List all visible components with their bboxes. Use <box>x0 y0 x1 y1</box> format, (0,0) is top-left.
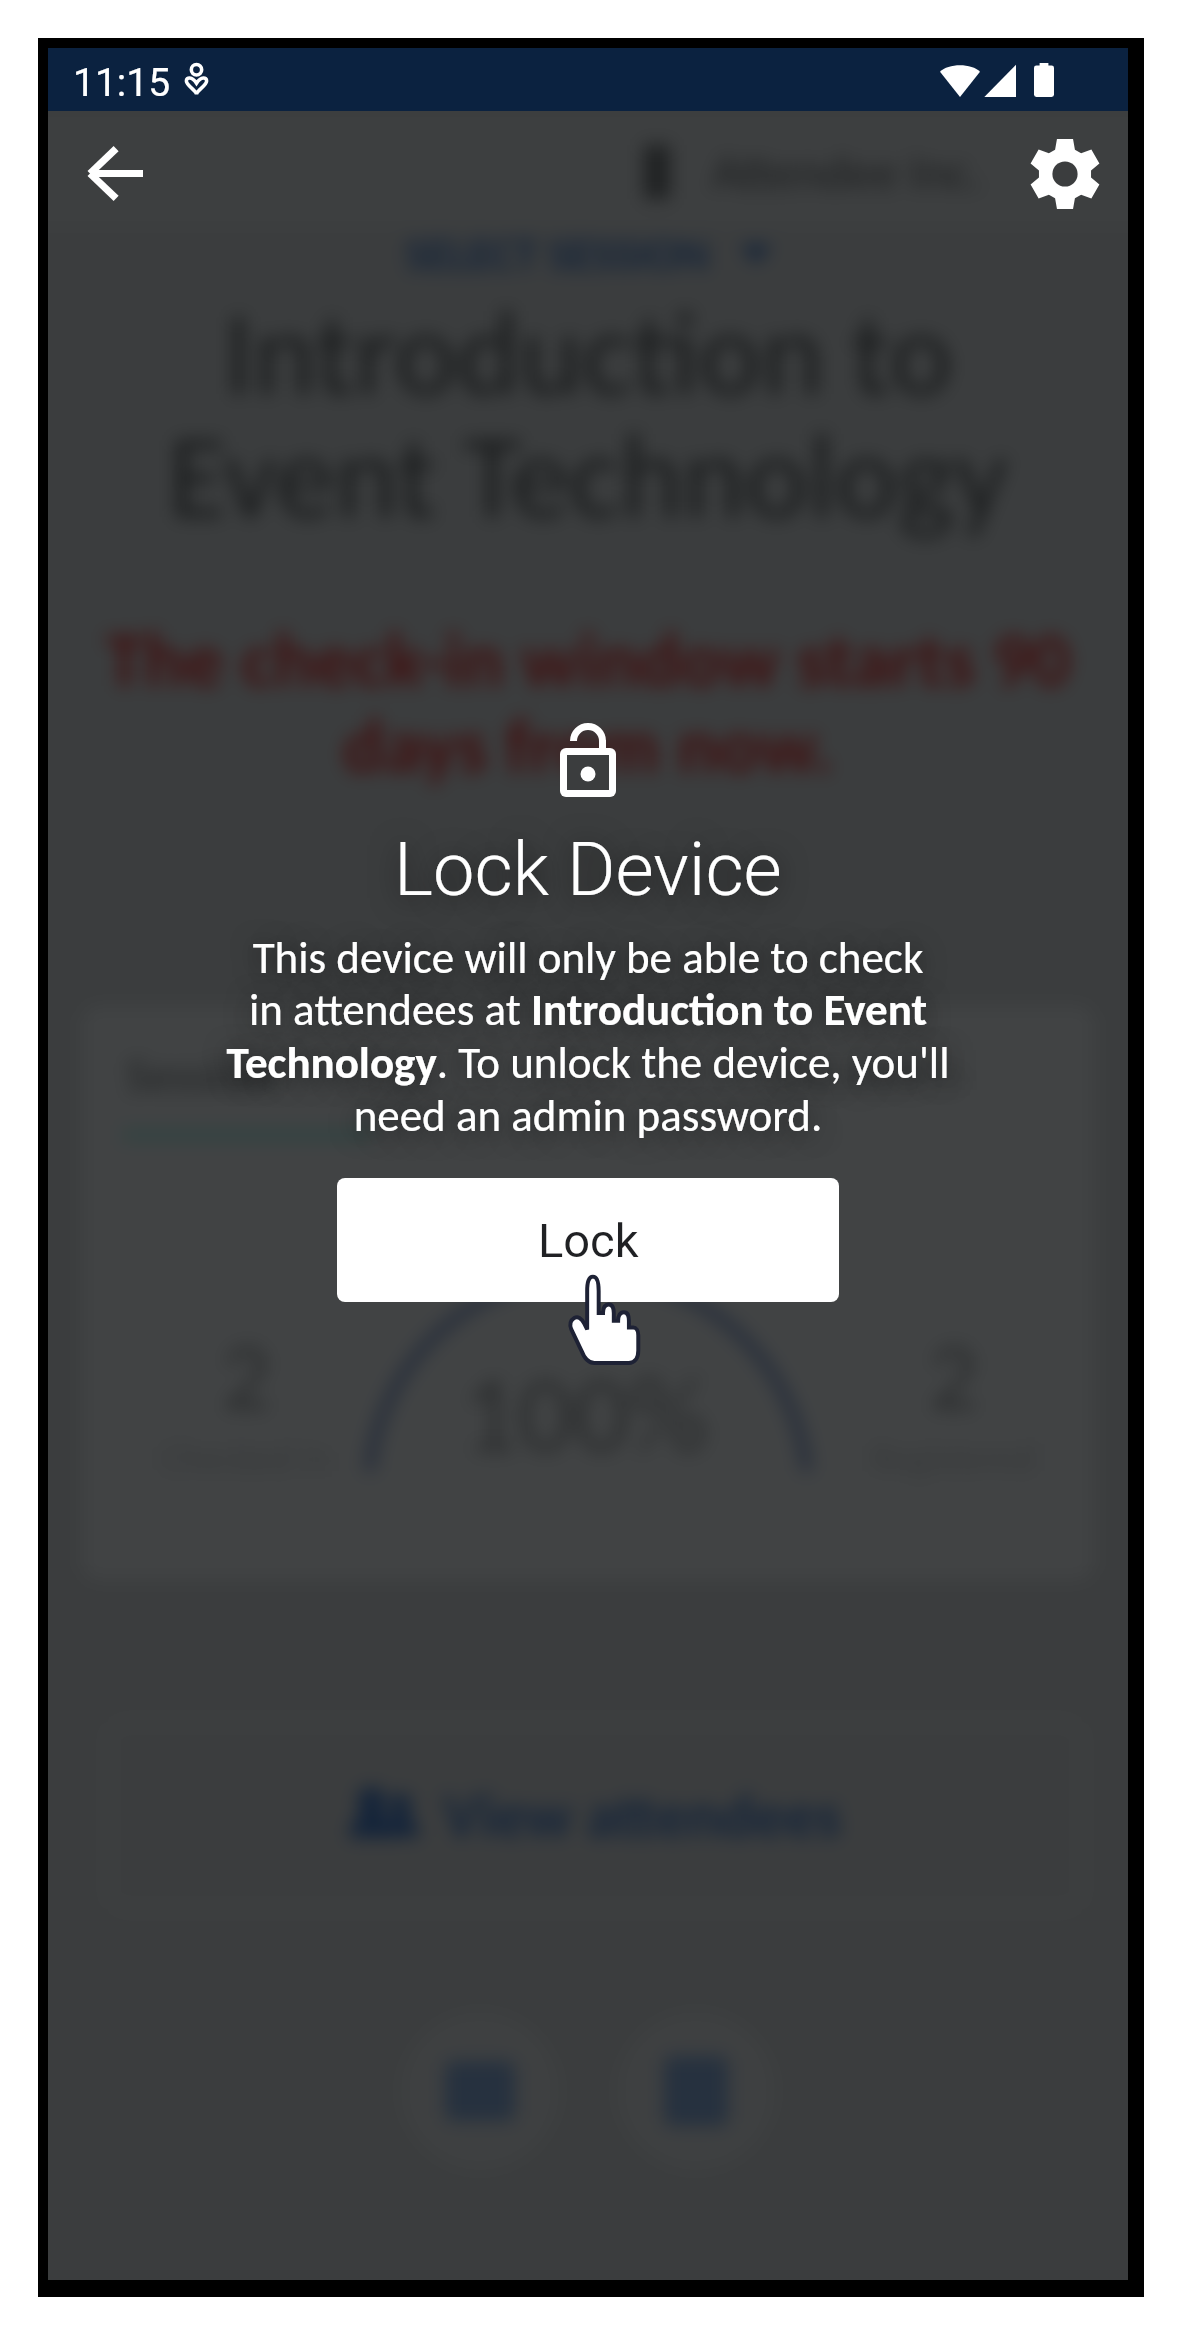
staticText: Checked in <box>772 1048 966 1102</box>
staticText: This device will only be able to check i… <box>208 930 968 1143</box>
button[interactable]: Back <box>55 113 175 233</box>
staticText: The check-in window starts 90 days from … <box>48 613 1128 793</box>
button[interactable]: Lock <box>337 1178 839 1302</box>
staticText: Attendee Inc. <box>712 141 982 202</box>
staticText: Lock Device <box>394 826 782 913</box>
staticText: SELECT SESSION <box>405 226 710 282</box>
staticText: Introduction to Event Technology <box>48 281 1128 549</box>
staticText: Lock <box>538 1213 639 1268</box>
staticText: View attendees <box>443 1778 841 1854</box>
button[interactable]: Settings <box>1005 114 1125 234</box>
staticText: 11:15 <box>73 60 171 106</box>
staticText: 100% <box>462 1346 708 1480</box>
staticText: Session <box>126 1046 275 1105</box>
